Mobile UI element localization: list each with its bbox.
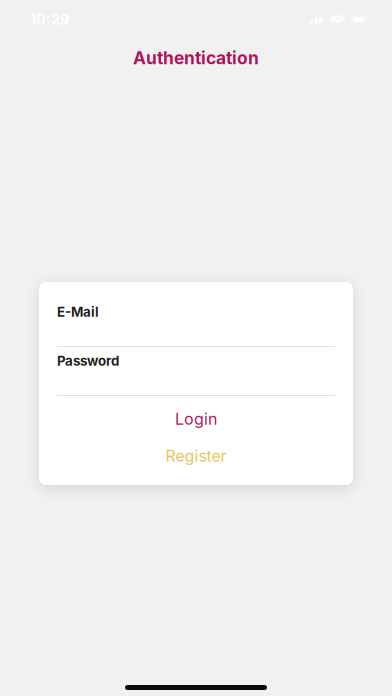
button[interactable]: Register: [57, 444, 335, 468]
staticText: E-Mail: [57, 304, 99, 320]
staticText: Login: [175, 409, 217, 429]
staticText: Password: [57, 353, 119, 369]
button[interactable]: E-Mail: [57, 305, 335, 347]
button[interactable]: Login: [57, 406, 335, 432]
staticText: Register: [165, 446, 226, 466]
staticText: Authentication: [133, 47, 259, 68]
staticText: 10:29: [30, 11, 69, 28]
button[interactable]: Password: [57, 354, 335, 396]
